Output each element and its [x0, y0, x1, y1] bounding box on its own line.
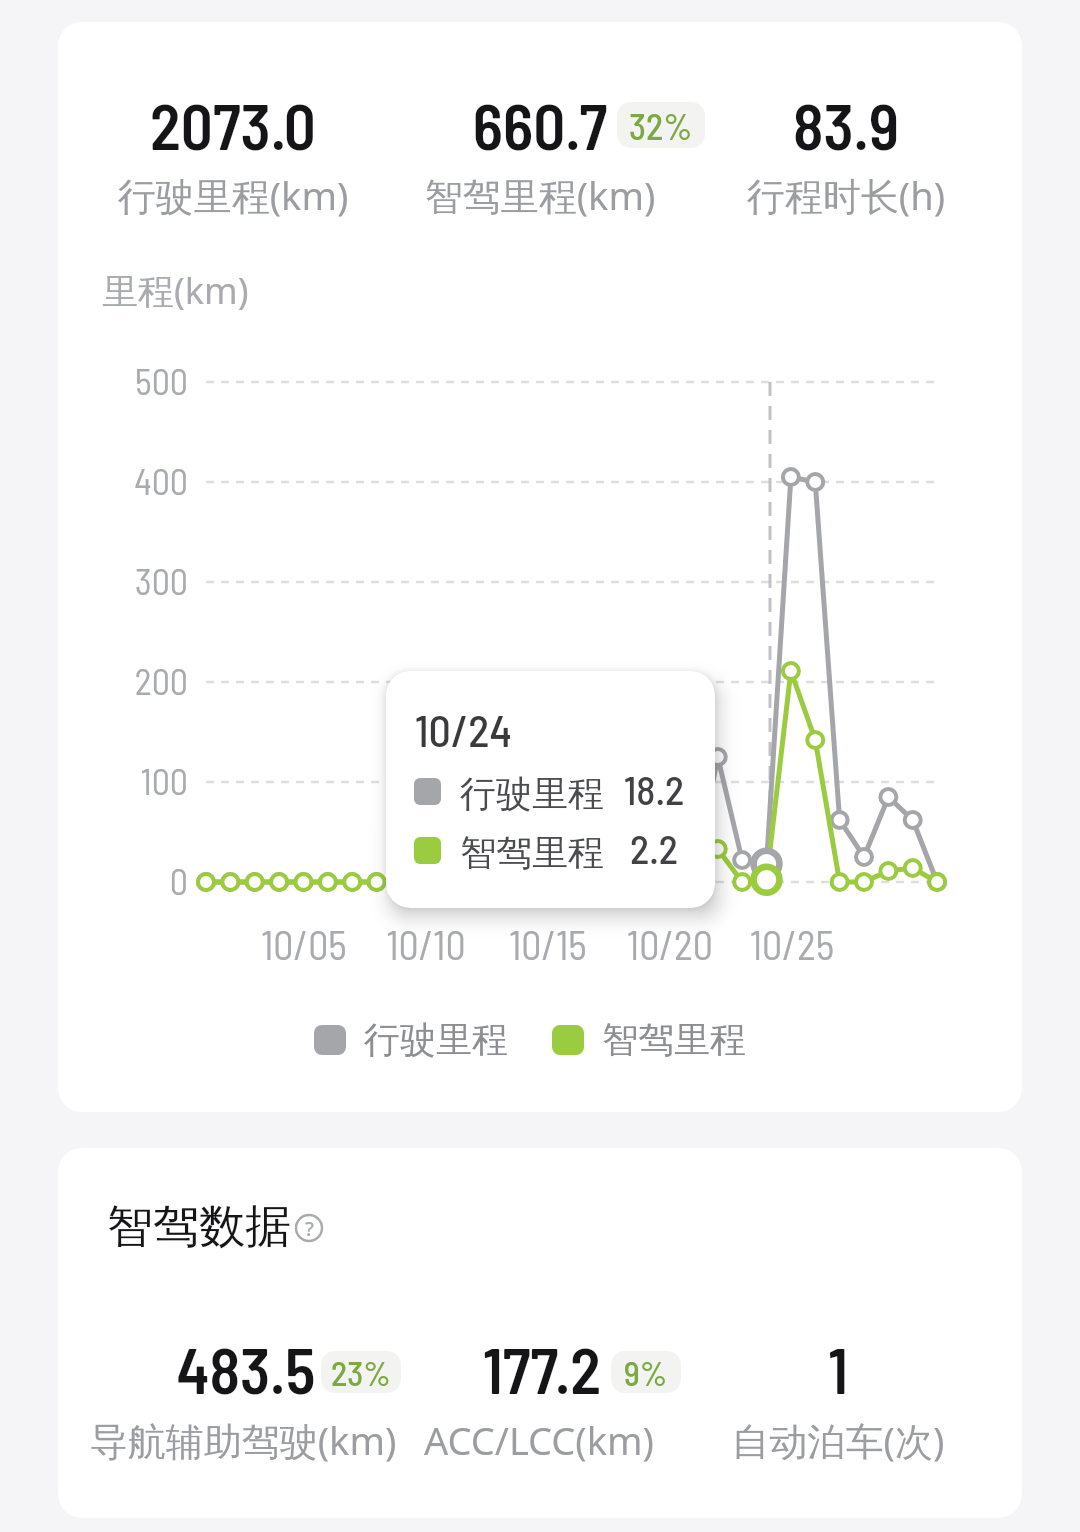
button[interactable]: ? — [293, 1212, 325, 1244]
staticText: ACC/LCC(km) — [369, 1414, 709, 1466]
staticText: 智驾里程 — [460, 830, 620, 875]
staticText: 500 — [108, 359, 188, 402]
staticText: 10/05 — [244, 920, 364, 968]
staticText: 2073.0 — [83, 87, 383, 163]
staticText: 智驾数据 — [107, 1198, 407, 1256]
staticText: 400 — [108, 459, 188, 502]
staticText: 0 — [108, 859, 188, 902]
staticText: 10/25 — [732, 920, 852, 968]
staticText: 660.7 — [390, 87, 690, 163]
staticText: 483.5 — [96, 1331, 396, 1407]
staticText: 行驶里程 — [460, 771, 620, 816]
staticText: 100 — [108, 759, 188, 802]
staticText: 2.2 — [594, 824, 714, 872]
staticText: 1 — [688, 1331, 988, 1407]
staticText: 23% — [331, 1352, 391, 1393]
staticText: 32% — [629, 104, 693, 147]
staticText: 10/15 — [488, 920, 608, 968]
staticText: 300 — [108, 559, 188, 602]
staticText: 9% — [624, 1352, 668, 1393]
staticText: 83.9 — [696, 87, 996, 163]
staticText: 智驾里程 — [602, 1017, 746, 1062]
staticText: 自动泊车(次) — [668, 1414, 1008, 1466]
staticText: 177.2 — [392, 1331, 692, 1407]
staticText: 10/10 — [366, 920, 486, 968]
staticText: 智驾里程(km) — [380, 169, 700, 221]
staticText: 10/20 — [610, 920, 730, 968]
staticText: 行驶里程(km) — [73, 169, 393, 221]
staticText: 200 — [108, 659, 188, 702]
staticText: 行驶里程 — [364, 1017, 508, 1062]
staticText: 导航辅助驾驶(km) — [73, 1414, 413, 1466]
staticText: ? — [305, 1215, 314, 1242]
staticText: 里程(km) — [102, 266, 322, 315]
staticText: 10/24 — [415, 703, 615, 756]
staticText: 18.2 — [594, 765, 714, 813]
staticText: 行程时长(h) — [686, 169, 1006, 221]
